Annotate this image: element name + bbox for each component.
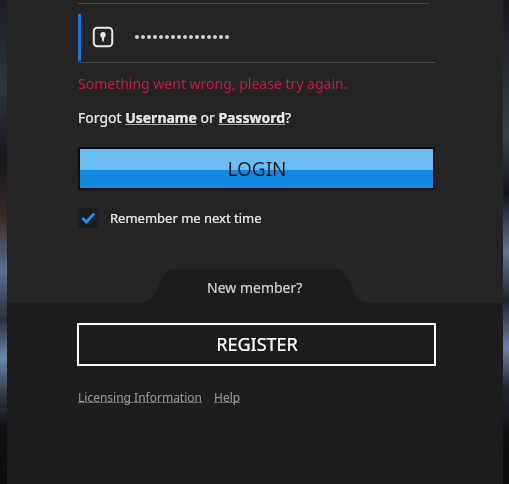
button[interactable]: Forgot Username or Password? (78, 108, 292, 127)
staticText: LOGIN (227, 156, 287, 182)
button[interactable]: Help (214, 389, 241, 405)
staticText: REGISTER (216, 332, 298, 357)
button[interactable]: Remember me next time (78, 208, 262, 228)
button[interactable]: New member? (207, 278, 303, 297)
staticText: Remember me next time (110, 209, 262, 227)
button[interactable]: Password (7, 4, 503, 63)
button[interactable]: REGISTER (78, 324, 435, 365)
button[interactable]: LOGIN (80, 149, 433, 188)
other: Password (92, 26, 114, 48)
staticText: Something went wrong, please try again. (78, 74, 348, 93)
button[interactable]: Licensing Information (78, 389, 202, 405)
